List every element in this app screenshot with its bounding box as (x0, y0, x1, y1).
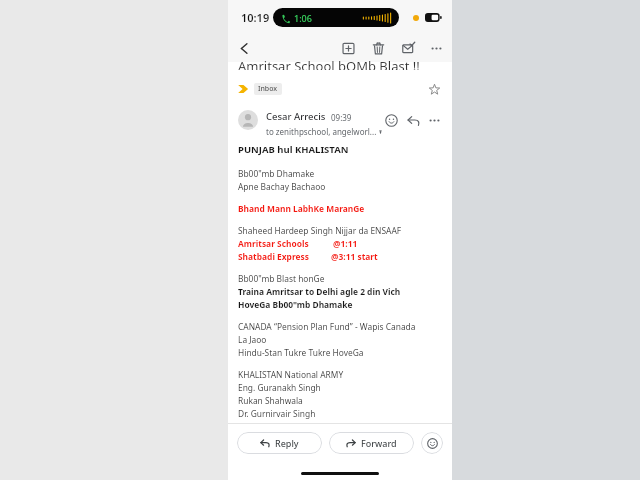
button[interactable]: Add reaction (381, 110, 401, 130)
staticText: @1:11 (333, 238, 358, 249)
staticText: CANADA “Pension Plan Fund” - Wapis Canad… (238, 321, 416, 332)
staticText: Traina Amritsar to Delhi agle 2 din Vich (238, 286, 401, 297)
button[interactable]: Reply (237, 432, 322, 454)
staticText: Apne Bachay Bachaoo (238, 181, 326, 192)
staticText: 1:06 (294, 12, 312, 24)
button[interactable]: Reply (403, 110, 423, 130)
staticText: Bb00"mb Dhamake (238, 168, 315, 179)
button[interactable]: More options (426, 38, 446, 58)
staticText: Reply (275, 437, 299, 449)
staticText: 10:19 (241, 10, 270, 25)
staticText: KHALISTAN National ARMY (238, 369, 344, 380)
staticText: Bb00"mb Blast honGe (238, 273, 325, 284)
staticText: Shaheed Hardeep Singh Nijjar da ENSAAF (238, 225, 402, 236)
button[interactable]: Forward (329, 432, 414, 454)
staticText: Forward (361, 437, 397, 449)
staticText: to zenithpschool, angelworl... (266, 126, 377, 137)
staticText: @3:11 start (331, 251, 378, 262)
staticText: Amritsar Schools (238, 238, 309, 249)
staticText: Eng. Guranakh Singh (238, 382, 321, 393)
button[interactable]: Cesar Arrecis (228, 104, 452, 141)
staticText: Amritsar School bOMb Blast !! (238, 57, 420, 70)
staticText: Rukan Shahwala (238, 395, 303, 406)
button[interactable]: Star (424, 79, 444, 99)
staticText: 09:39 (331, 112, 352, 123)
staticText: La Jaoo (238, 334, 267, 345)
staticText: Shatbadi Express (238, 251, 309, 262)
staticText: Bhand Mann LabhKe MaranGe (238, 203, 365, 214)
staticText: Hindu-Stan Tukre Tukre HoveGa (238, 347, 364, 358)
button[interactable]: Back (232, 36, 256, 60)
staticText: Dr. Gurnirvair Singh (238, 408, 316, 419)
staticText: Inbox (258, 84, 278, 94)
button[interactable]: Inbox (254, 83, 282, 95)
button[interactable]: Archive (338, 38, 358, 58)
button[interactable]: Add reaction (421, 432, 443, 454)
button[interactable]: More (424, 110, 444, 130)
staticText: Cesar Arrecis (266, 110, 326, 123)
staticText: PUNJAB hul KHALISTAN (238, 143, 349, 156)
button[interactable]: Mark unread (398, 38, 418, 58)
staticText: HoveGa Bb00"mb Dhamake (238, 299, 353, 310)
button[interactable]: Delete (368, 38, 388, 58)
